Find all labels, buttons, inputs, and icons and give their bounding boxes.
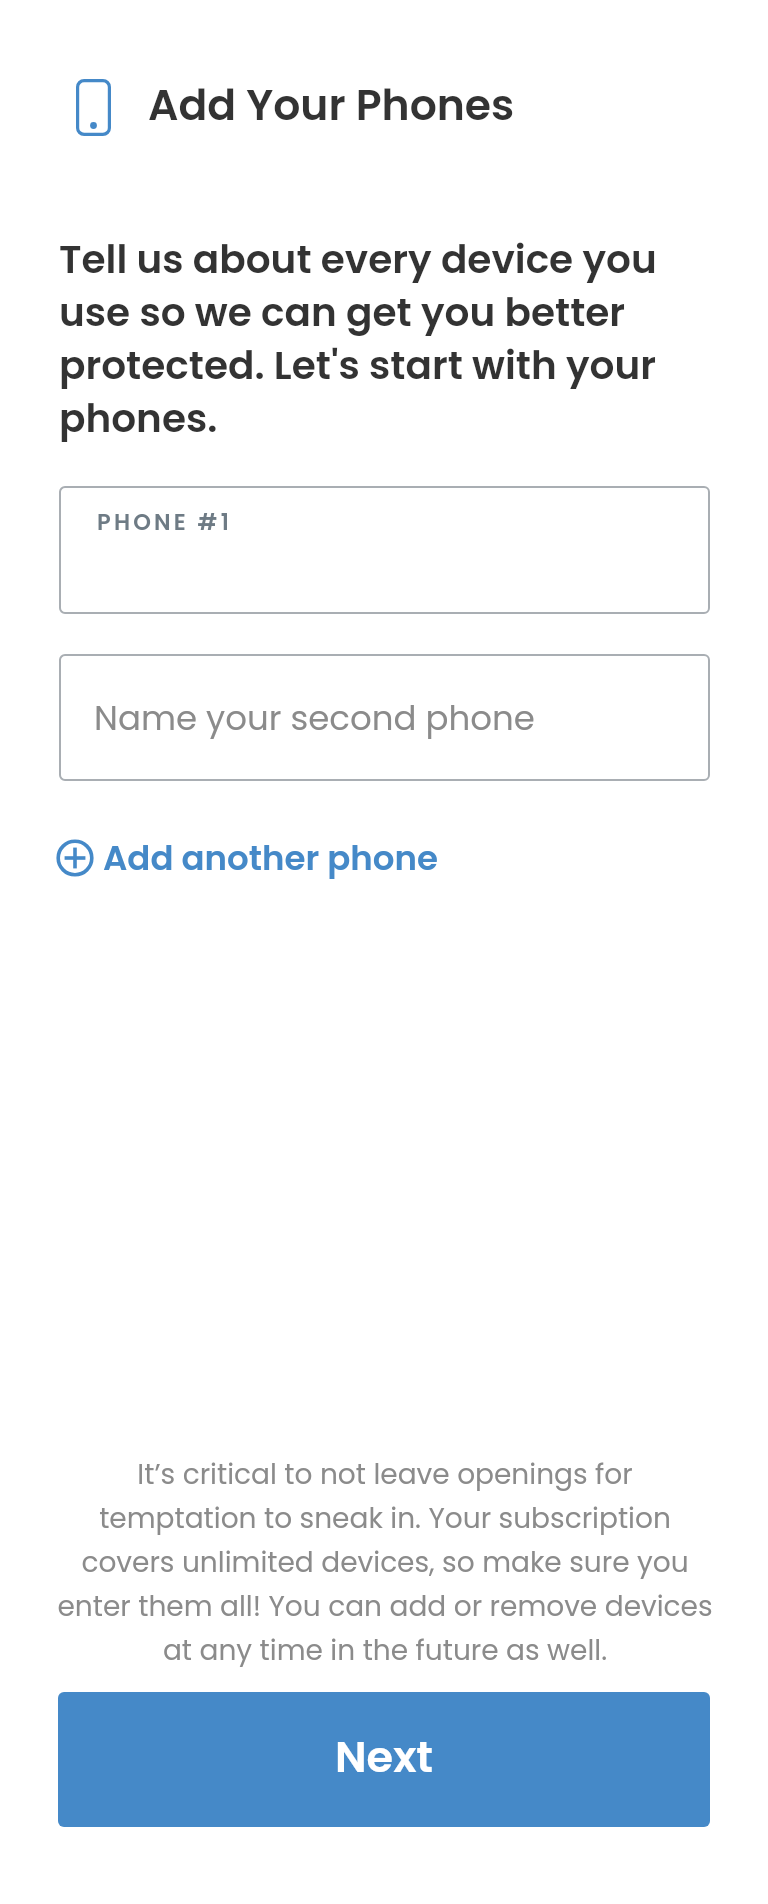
staticText: Name your second phone (94, 694, 535, 742)
staticText: Add another phone (103, 834, 438, 882)
button[interactable]: Next (58, 1692, 710, 1827)
other: Phone (76, 79, 111, 136)
staticText: It’s critical to not leave openings for … (46, 1455, 724, 1670)
button[interactable]: Add another phone (56, 834, 438, 882)
button[interactable]: PHONE #1 (59, 486, 710, 614)
button[interactable]: Name your second phone (59, 654, 710, 781)
staticText: PHONE #1 (97, 506, 233, 537)
other: Add another phone (56, 839, 94, 877)
staticText: Tell us about every device you use so we… (59, 232, 712, 446)
staticText: Add Your Phones (148, 75, 515, 134)
staticText: Next (335, 1727, 434, 1787)
